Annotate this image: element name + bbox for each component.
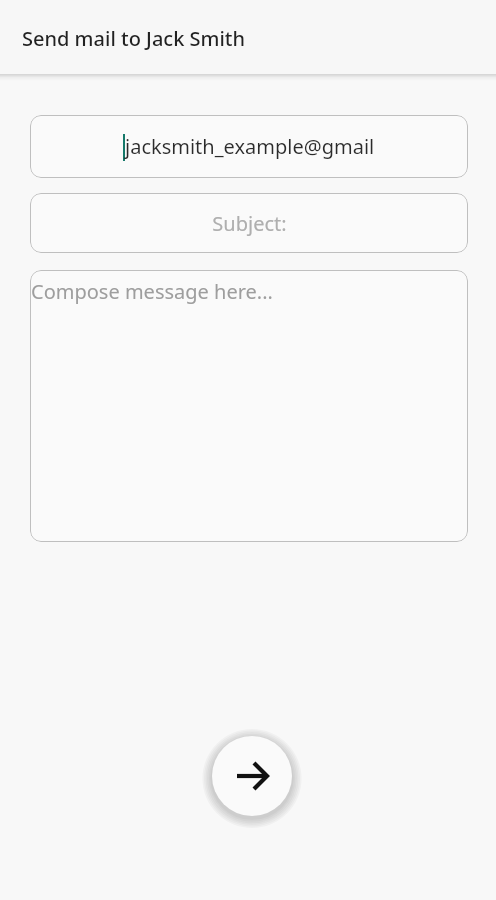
staticText: Subject: [212,210,287,237]
button[interactable]: Compose message here... [30,270,468,542]
button[interactable]: jacksmith_example@gmail [30,115,468,178]
staticText: jacksmith_example@gmail [125,133,375,160]
button[interactable]: Subject: [30,193,468,253]
staticText: Compose message here... [31,278,273,305]
button[interactable]: Send [208,732,296,820]
staticText: Send mail to Jack Smith [22,25,246,52]
